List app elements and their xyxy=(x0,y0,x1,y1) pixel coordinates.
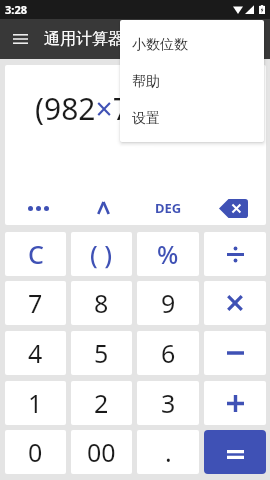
button[interactable]: 小数位数 xyxy=(120,26,264,63)
staticText: 0 xyxy=(28,435,43,469)
button[interactable]: Backspace xyxy=(201,191,266,225)
button[interactable]: 3 xyxy=(137,381,199,425)
staticText: ( ) xyxy=(90,237,113,271)
staticText: 00 xyxy=(87,435,116,469)
staticText: 通用计算器 xyxy=(44,29,124,49)
staticText: 6 xyxy=(161,336,176,370)
staticText: % xyxy=(157,237,179,271)
staticText: 设置 xyxy=(132,110,160,128)
staticText: 1 xyxy=(28,386,43,420)
button[interactable]: C xyxy=(5,232,66,276)
button[interactable] xyxy=(204,232,266,276)
button[interactable] xyxy=(204,331,266,375)
staticText: (982×7) xyxy=(35,88,139,129)
button[interactable]: % xyxy=(137,232,199,276)
staticText: DEG xyxy=(155,199,182,217)
button[interactable]: 9 xyxy=(137,281,199,325)
button[interactable]: 00 xyxy=(71,430,132,474)
staticText: . xyxy=(165,435,172,469)
staticText: C xyxy=(28,237,44,271)
button[interactable]: 2 xyxy=(71,381,132,425)
button[interactable]: . xyxy=(137,430,199,474)
button[interactable]: More functions xyxy=(5,191,71,225)
button[interactable]: 设置 xyxy=(120,100,264,137)
staticText: 8 xyxy=(94,286,109,320)
button[interactable]: 帮助 xyxy=(120,63,264,100)
button[interactable]: ( ) xyxy=(71,232,132,276)
button[interactable] xyxy=(204,281,266,325)
staticText: 2 xyxy=(94,386,109,420)
button[interactable]: 8 xyxy=(71,281,132,325)
staticText: 帮助 xyxy=(132,73,160,91)
button[interactable]: Open navigation menu xyxy=(9,28,31,50)
button[interactable]: 0 xyxy=(5,430,66,474)
button[interactable]: Exponent xyxy=(71,191,136,225)
staticText: 3:28 xyxy=(5,2,27,17)
button[interactable]: 6 xyxy=(137,331,199,375)
button[interactable]: 4 xyxy=(5,331,66,375)
button[interactable]: 1 xyxy=(5,381,66,425)
button[interactable] xyxy=(204,381,266,425)
staticText: 7 xyxy=(28,286,43,320)
staticText: 3 xyxy=(161,386,176,420)
button[interactable]: Equals xyxy=(204,430,266,474)
button[interactable]: DEG xyxy=(136,191,201,225)
staticText: 5 xyxy=(94,336,109,370)
staticText: 9 xyxy=(161,286,176,320)
button[interactable]: 7 xyxy=(5,281,66,325)
staticText: 4 xyxy=(28,336,43,370)
button[interactable]: 5 xyxy=(71,331,132,375)
staticText: 小数位数 xyxy=(132,36,188,54)
